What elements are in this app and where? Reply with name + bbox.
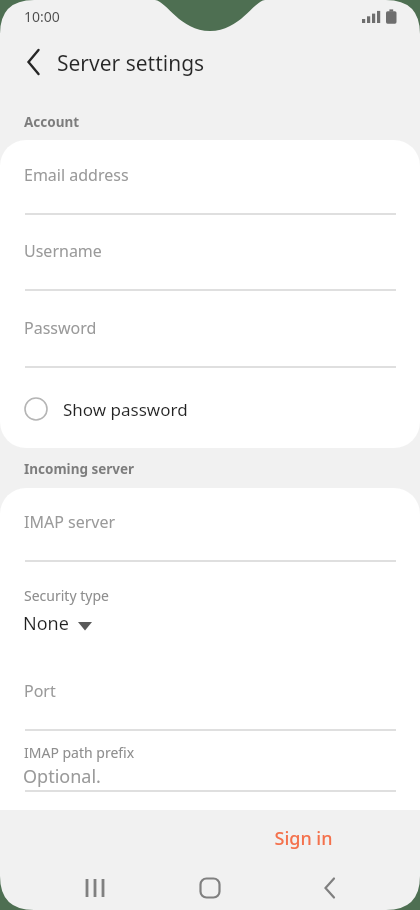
staticText: None — [23, 611, 69, 636]
staticText: Port — [24, 680, 56, 702]
button[interactable]: Home — [186, 864, 234, 910]
button[interactable]: Password — [0, 314, 420, 380]
button[interactable]: Recent apps — [71, 864, 119, 910]
staticText: Optional. — [23, 764, 101, 789]
staticText: IMAP path prefix — [24, 743, 135, 762]
staticText: Email address — [24, 164, 129, 186]
staticText: Password — [24, 317, 97, 339]
staticText: IMAP server — [24, 511, 116, 533]
button[interactable]: Port — [0, 677, 420, 743]
button[interactable]: Show password — [0, 385, 420, 433]
staticText: Account — [24, 113, 80, 131]
button[interactable]: IMAP server — [0, 508, 420, 574]
staticText: Incoming server — [24, 460, 135, 478]
button[interactable]: Sign in — [258, 818, 348, 858]
button[interactable]: Security type — [0, 580, 420, 652]
staticText: Show password — [63, 398, 188, 421]
button[interactable]: Back — [306, 864, 354, 910]
staticText: 10:00 — [24, 7, 60, 26]
staticText: Sign in — [274, 826, 333, 851]
staticText: Server settings — [57, 49, 205, 78]
button[interactable]: Username — [0, 237, 420, 303]
button[interactable]: IMAP path prefix — [0, 743, 420, 810]
staticText: Username — [24, 240, 102, 262]
button[interactable]: Back — [12, 40, 56, 84]
button[interactable]: Email address — [0, 161, 420, 227]
staticText: Security type — [24, 586, 109, 605]
